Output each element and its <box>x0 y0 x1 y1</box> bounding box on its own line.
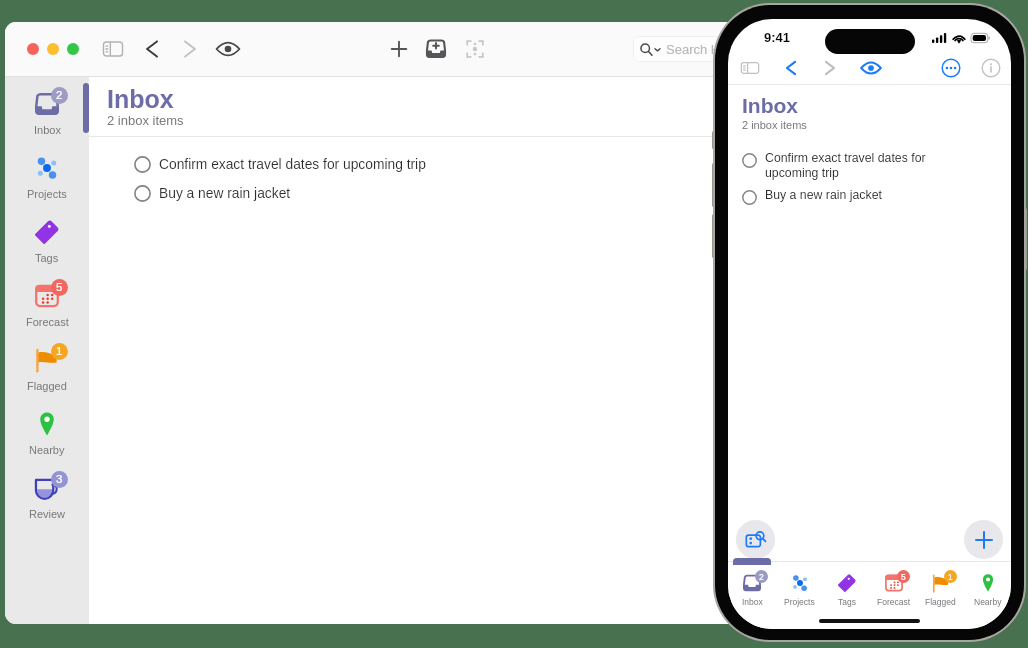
button[interactable]: New item <box>386 36 412 62</box>
staticText: Inbox <box>742 94 798 117</box>
button[interactable]: View options <box>859 56 883 80</box>
button[interactable]: Confirm exact travel dates for upcoming … <box>89 150 1000 179</box>
staticText: 5 <box>901 572 906 581</box>
staticText: Nearby <box>29 444 65 456</box>
button[interactable]: 1 <box>5 344 89 408</box>
button[interactable]: View options <box>214 35 242 63</box>
staticText: Projects <box>27 188 67 200</box>
button[interactable]: Add <box>964 520 1003 559</box>
button[interactable]: 5 <box>5 280 89 344</box>
button[interactable]: 3 <box>5 472 89 536</box>
button[interactable]: New inbox item <box>424 37 448 61</box>
button[interactable]: Buy a new rain jacket <box>89 179 1000 208</box>
button[interactable]: Forward <box>177 36 203 62</box>
staticText: Forecast <box>877 597 911 606</box>
staticText: 2 <box>56 89 63 102</box>
button[interactable]: Focus <box>462 36 488 62</box>
staticText: Flagged <box>27 380 67 392</box>
staticText: Inbox <box>107 85 174 113</box>
button[interactable]: 1 <box>917 568 964 610</box>
staticText: 5 <box>56 281 63 294</box>
button[interactable]: Forward <box>819 57 841 79</box>
staticText: Buy a new rain jacket <box>765 188 882 202</box>
staticText: Confirm exact travel dates for upcoming … <box>765 151 926 180</box>
button[interactable]: Back <box>139 36 165 62</box>
staticText: Review <box>29 508 66 520</box>
button[interactable]: Projects <box>776 568 823 610</box>
button[interactable]: Toggle sidebar <box>99 35 127 63</box>
button[interactable]: Back <box>780 57 802 79</box>
staticText: 3 <box>56 473 63 486</box>
button[interactable]: 2 <box>5 88 89 152</box>
staticText: Flagged <box>925 597 956 606</box>
button[interactable]: Tags <box>823 568 870 610</box>
staticText: 2 <box>759 572 764 581</box>
staticText: Forecast <box>26 316 69 328</box>
button[interactable]: More <box>940 57 962 79</box>
staticText: 9:41 <box>764 30 791 45</box>
button[interactable]: Search Here <box>633 36 833 62</box>
button[interactable]: Nearby <box>5 408 89 472</box>
button[interactable]: Projects <box>5 152 89 216</box>
staticText: Search Here <box>666 42 739 57</box>
button[interactable]: 5 <box>870 568 917 610</box>
button[interactable]: Minimize <box>47 43 59 55</box>
staticText: Buy a new rain jacket <box>159 186 291 201</box>
staticText: 1 <box>56 345 63 358</box>
button[interactable]: Zoom <box>67 43 79 55</box>
button[interactable]: 2 <box>728 568 776 610</box>
staticText: Tags <box>35 252 59 264</box>
staticText: 2 inbox items <box>742 119 807 131</box>
staticText: Inbox <box>34 124 61 136</box>
staticText: Tags <box>838 597 856 606</box>
staticText: Nearby <box>974 597 1002 606</box>
button[interactable]: Close <box>27 43 39 55</box>
button[interactable]: Toggle sidebar <box>738 56 762 80</box>
button[interactable]: Confirm exact travel dates for upcoming … <box>742 151 1011 180</box>
staticText: Inbox <box>742 597 763 606</box>
button[interactable]: Buy a new rain jacket <box>742 188 1011 203</box>
button[interactable]: Search perspectives <box>736 520 775 559</box>
staticText: Confirm exact travel dates for upcoming … <box>159 157 426 172</box>
staticText: Projects <box>784 597 815 606</box>
staticText: 2 inbox items <box>107 113 184 128</box>
button[interactable]: Info <box>980 57 1002 79</box>
staticText: 1 <box>948 572 953 581</box>
button[interactable]: Nearby <box>964 568 1011 610</box>
button[interactable]: Tags <box>5 216 89 280</box>
